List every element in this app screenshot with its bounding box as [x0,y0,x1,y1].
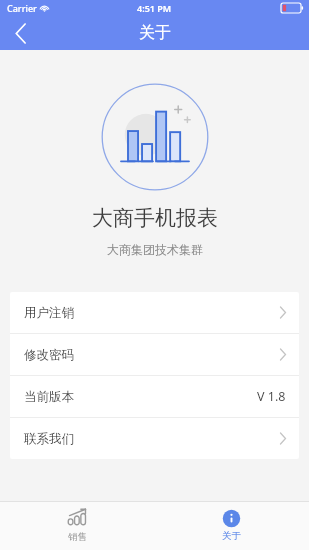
staticText: 大商手机报表 [92,205,218,231]
button[interactable]: 用户注销 [10,292,299,333]
staticText: 关于 [139,23,171,43]
button[interactable]: 关于 [154,501,309,550]
staticText: 4:51 PM [137,2,172,14]
staticText: V 1.8 [257,388,286,405]
button[interactable]: Back [0,16,40,50]
staticText: 联系我们 [24,431,74,447]
staticText: 大商集团技术集群 [107,242,203,257]
staticText: 用户注销 [24,305,74,321]
staticText: 修改密码 [24,347,74,363]
staticText: 当前版本 [24,389,74,405]
button[interactable]: 修改密码 [10,334,299,375]
staticText: 销售 [68,531,87,543]
button[interactable]: 联系我们 [10,418,299,459]
staticText: 关于 [222,530,241,542]
button[interactable]: 当前版本 [10,376,299,417]
button[interactable]: 销售 [0,501,154,550]
staticText: Carrier [7,2,37,14]
